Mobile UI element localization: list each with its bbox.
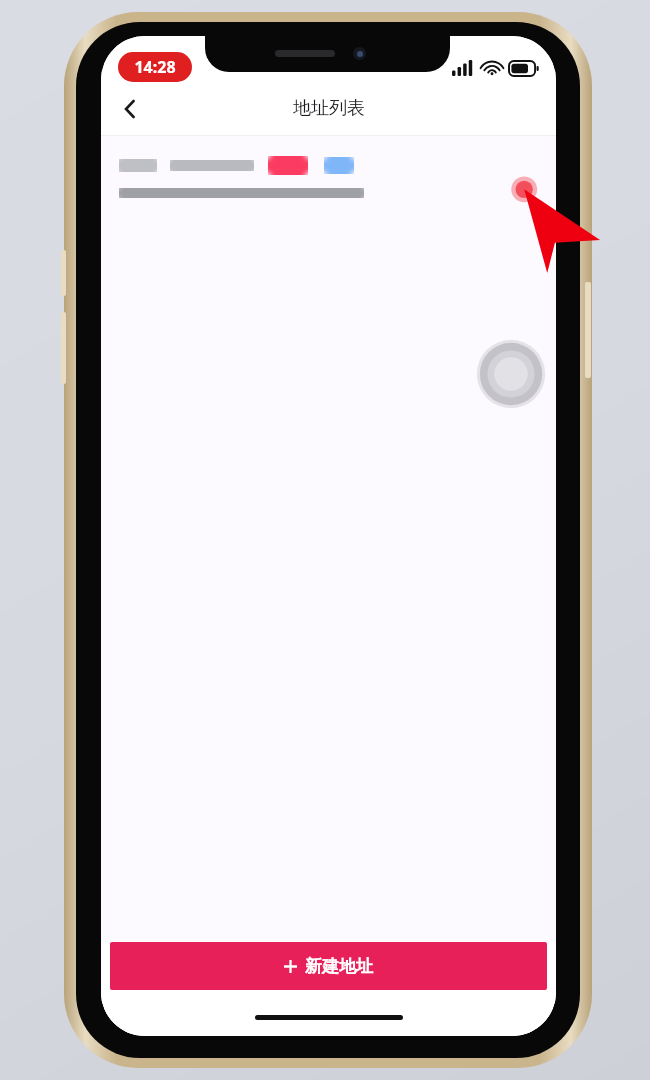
button[interactable]: 新建地址 — [110, 942, 547, 990]
button[interactable]: AssistiveTouch — [473, 336, 549, 412]
staticText: 新建地址 — [305, 956, 373, 977]
staticText: 地址列表 — [293, 97, 365, 120]
button[interactable] — [101, 144, 556, 210]
button[interactable]: Back — [107, 86, 153, 132]
staticText: 14:28 — [134, 56, 176, 78]
